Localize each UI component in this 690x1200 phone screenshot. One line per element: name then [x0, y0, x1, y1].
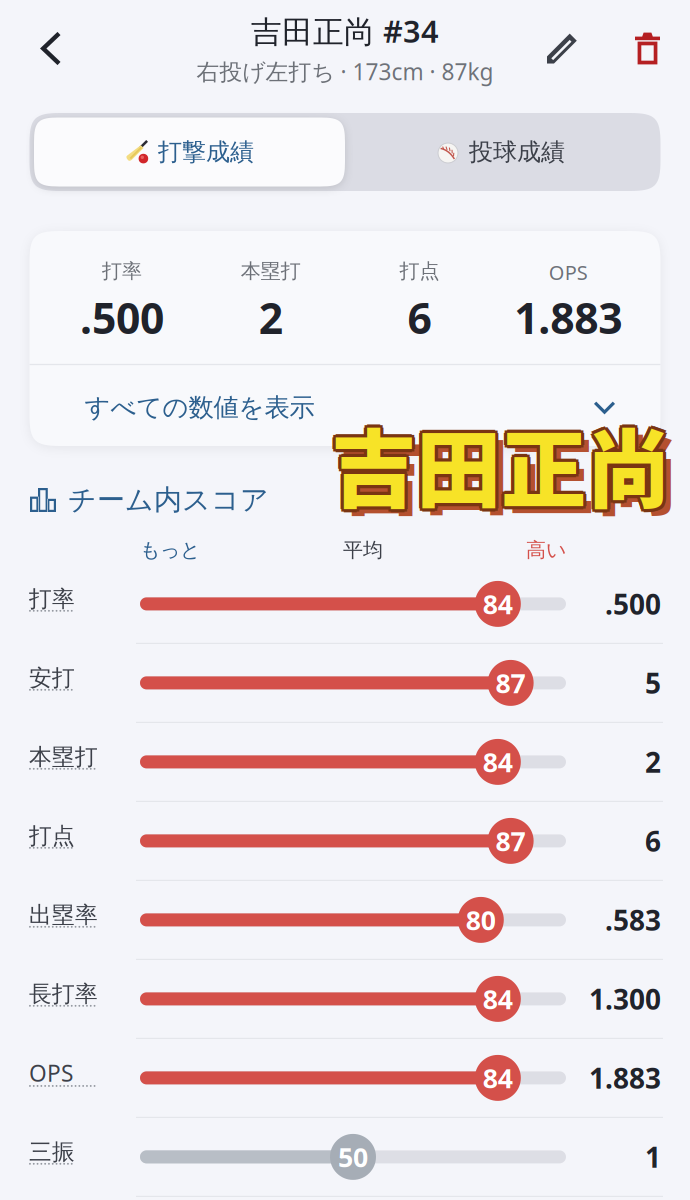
staticText: 三振 — [29, 1138, 75, 1166]
staticText: 吉田正尚 — [333, 404, 673, 528]
staticText: 1.883 — [514, 289, 622, 346]
staticText: 打点 — [399, 259, 439, 283]
staticText: .500 — [605, 585, 661, 622]
staticText: チーム内スコア — [68, 483, 269, 517]
staticText: 平均 — [343, 538, 383, 562]
staticText: すべての数値を表示 — [84, 392, 314, 423]
staticText: 吉田正尚 — [339, 409, 679, 533]
staticText: 打率 — [29, 585, 75, 613]
staticText: 6 — [645, 822, 661, 859]
staticText: OPS — [549, 259, 588, 285]
staticText: 50 — [338, 1139, 368, 1175]
button[interactable]: Back — [0, 0, 76, 97]
staticText: 6 — [407, 289, 431, 346]
button[interactable]: 投球成績 — [345, 117, 656, 186]
staticText: 1.300 — [589, 980, 661, 1017]
staticText: 1 — [645, 1138, 661, 1175]
staticText: 吉田正尚 — [331, 402, 671, 526]
staticText: 84 — [483, 744, 513, 780]
staticText: 打撃成績 — [158, 137, 254, 167]
staticText: 2 — [259, 289, 283, 346]
staticText: .500 — [80, 289, 164, 346]
staticText: 吉田正尚 — [329, 400, 669, 523]
staticText: 84 — [483, 586, 513, 622]
staticText: 長打率 — [29, 980, 98, 1008]
staticText: 1.883 — [589, 1059, 661, 1096]
staticText: 吉田正尚 — [329, 404, 669, 528]
staticText: 安打 — [29, 664, 75, 692]
staticText: 2 — [645, 743, 661, 780]
staticText: 吉田正尚 — [333, 400, 673, 523]
staticText: 吉田正尚 — [331, 405, 671, 529]
button[interactable]: 打撃成績 — [34, 117, 345, 186]
button[interactable]: Delete — [603, 0, 690, 97]
staticText: .583 — [605, 901, 661, 938]
staticText: 打率 — [102, 259, 142, 283]
button[interactable]: Edit — [543, 0, 603, 97]
staticText: 出塁率 — [29, 901, 98, 929]
staticText: 右投げ左打ち · 173cm · 87kg — [196, 56, 493, 86]
staticText: 高い — [526, 538, 566, 562]
staticText: 本塁打 — [241, 259, 301, 283]
staticText: 本塁打 — [29, 743, 98, 771]
staticText: 吉田正尚 — [331, 399, 671, 522]
staticText: OPS — [29, 1058, 73, 1088]
staticText: 打点 — [29, 822, 75, 850]
staticText: 84 — [483, 1060, 513, 1096]
staticText: 84 — [483, 981, 513, 1017]
staticText: 80 — [466, 902, 496, 938]
staticText: もっと — [140, 538, 200, 562]
staticText: 吉田正尚 #34 — [251, 11, 439, 51]
button[interactable]: すべての数値を表示 — [29, 365, 660, 446]
staticText: 87 — [496, 823, 526, 859]
staticText: 5 — [645, 664, 661, 701]
staticText: 吉田正尚 — [328, 402, 668, 526]
staticText: 87 — [496, 665, 526, 701]
staticText: 投球成績 — [469, 137, 565, 167]
staticText: 吉田正尚 — [334, 402, 674, 526]
